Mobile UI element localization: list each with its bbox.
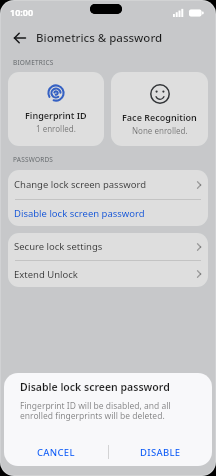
staticText: DISABLE — [140, 446, 181, 459]
staticText: Change lock screen password — [14, 178, 147, 191]
staticText: PASSWORDS — [13, 155, 54, 164]
staticText: Fingerprint ID — [25, 109, 87, 121]
staticText: Secure lock settings — [14, 240, 103, 253]
staticText: 1 enrolled. — [36, 123, 76, 134]
button[interactable] — [14, 32, 26, 44]
staticText: None enrolled. — [132, 125, 188, 136]
button[interactable]: Disable lock screen password — [8, 200, 208, 226]
staticText: Disable lock screen password — [20, 380, 170, 394]
staticText: Biometrics & password — [36, 30, 163, 46]
button[interactable]: Fingerprint ID — [8, 72, 104, 146]
button[interactable]: Face Recognition — [111, 72, 208, 146]
staticText: Face Recognition — [122, 111, 197, 123]
staticText: Extend Unlock — [14, 268, 78, 281]
staticText: 10:00 — [10, 6, 34, 18]
staticText: Fingerprint ID will be disabled, and all… — [20, 400, 196, 422]
button[interactable]: Change lock screen password — [8, 170, 208, 199]
button[interactable]: Extend Unlock — [8, 261, 208, 287]
staticText: CANCEL — [37, 446, 75, 459]
button[interactable]: Secure lock settings — [8, 233, 208, 260]
staticText: Disable lock screen password — [14, 207, 145, 220]
staticText: BIOMETRICS — [13, 58, 54, 67]
button[interactable]: CANCEL — [4, 438, 108, 466]
staticText: 10:00 — [10, 6, 34, 18]
button[interactable]: DISABLE — [108, 438, 212, 466]
